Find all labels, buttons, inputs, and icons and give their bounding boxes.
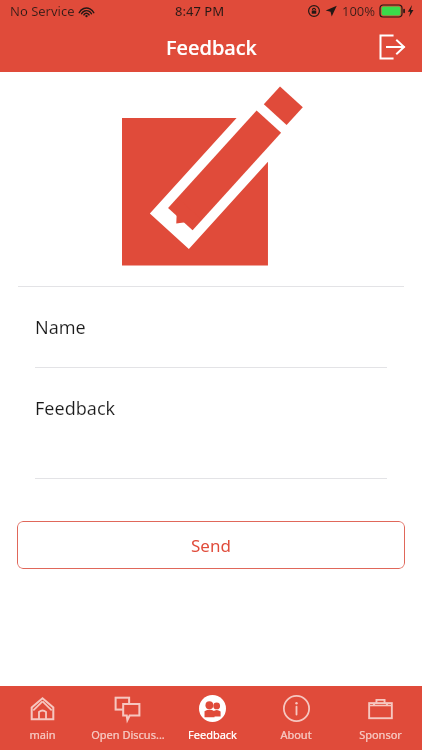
staticText: Feedback: [35, 396, 116, 421]
button[interactable]: Feedback: [170, 686, 254, 750]
staticText: 100%: [342, 2, 376, 20]
staticText: Name: [35, 315, 86, 340]
button[interactable]: Open Discus...: [85, 686, 170, 750]
staticText: Feedback: [166, 34, 257, 61]
button[interactable]: Feedback: [0, 396, 422, 479]
staticText: Feedback: [188, 727, 237, 742]
staticText: Sponsor: [359, 727, 402, 742]
button[interactable]: main: [0, 686, 85, 750]
button[interactable]: Log out: [370, 25, 414, 69]
staticText: No Service: [10, 2, 75, 20]
button[interactable]: Send: [17, 521, 405, 569]
staticText: Send: [191, 534, 231, 557]
button[interactable]: Name: [0, 315, 422, 368]
button[interactable]: Sponsor: [338, 686, 422, 750]
button[interactable]: About: [254, 686, 338, 750]
staticText: About: [280, 727, 312, 742]
staticText: Open Discus...: [91, 727, 165, 742]
staticText: 8:47 PM: [175, 2, 225, 20]
staticText: main: [29, 727, 56, 742]
